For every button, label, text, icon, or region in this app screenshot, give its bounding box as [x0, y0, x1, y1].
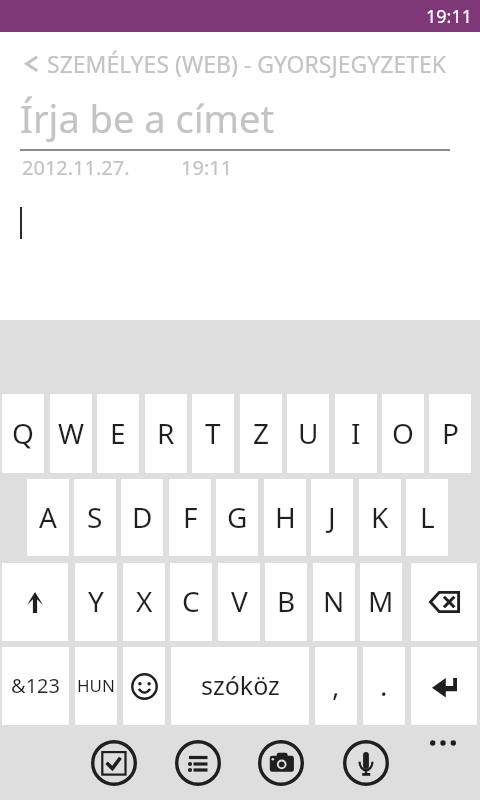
button[interactable]: Voice note: [343, 740, 389, 786]
button[interactable]: L: [406, 479, 448, 556]
button[interactable]: B: [265, 563, 307, 641]
staticText: B: [277, 582, 296, 620]
staticText: Írja be a címet: [20, 92, 275, 144]
staticText: M: [368, 582, 394, 620]
staticText: R: [157, 414, 175, 452]
button[interactable]: D: [121, 479, 163, 556]
button[interactable]: szóköz: [171, 647, 309, 725]
button[interactable]: ,: [315, 647, 357, 725]
button[interactable]: X: [123, 563, 165, 641]
button[interactable]: E: [97, 394, 139, 473]
staticText: C: [182, 582, 200, 620]
staticText: A: [39, 498, 57, 536]
staticText: ,: [332, 666, 340, 704]
button[interactable]: V: [218, 563, 260, 641]
button[interactable]: [411, 563, 477, 641]
staticText: L: [420, 498, 435, 536]
button[interactable]: Q: [2, 394, 44, 473]
button[interactable]: P: [429, 394, 471, 473]
staticText: K: [371, 498, 389, 536]
staticText: T: [205, 414, 221, 452]
staticText: HUN: [77, 674, 115, 697]
button[interactable]: [2, 563, 68, 641]
staticText: S: [87, 498, 103, 536]
button[interactable]: Camera: [258, 740, 304, 786]
staticText: V: [231, 582, 248, 620]
staticText: O: [392, 414, 414, 452]
staticText: P: [442, 414, 459, 452]
button[interactable]: C: [170, 563, 212, 641]
button[interactable]: &123: [2, 647, 69, 725]
button[interactable]: S: [74, 479, 116, 556]
staticText: SZEMÉLYES (WEB) - GYORSJEGYZETEK: [47, 48, 447, 79]
button[interactable]: [411, 647, 477, 725]
button[interactable]: U: [287, 394, 329, 473]
button[interactable]: H: [264, 479, 306, 556]
staticText: I: [351, 414, 361, 452]
button[interactable]: [123, 647, 165, 725]
staticText: szóköz: [201, 668, 280, 702]
button[interactable]: HUN: [75, 647, 117, 725]
staticText: G: [227, 498, 248, 536]
button[interactable]: J: [311, 479, 353, 556]
button[interactable]: K: [359, 479, 401, 556]
staticText: Y: [88, 582, 104, 620]
button[interactable]: I: [335, 394, 377, 473]
staticText: X: [136, 582, 153, 620]
staticText: Z: [253, 414, 270, 452]
staticText: F: [183, 498, 198, 536]
staticText: J: [328, 498, 336, 536]
button[interactable]: Y: [75, 563, 117, 641]
staticText: U: [298, 414, 319, 452]
button[interactable]: G: [216, 479, 258, 556]
staticText: E: [110, 414, 126, 452]
button[interactable]: W: [50, 394, 92, 473]
button[interactable]: M: [360, 563, 402, 641]
button[interactable]: .: [363, 647, 405, 725]
button[interactable]: O: [382, 394, 424, 473]
staticText: H: [275, 498, 296, 536]
staticText: D: [132, 498, 153, 536]
staticText: 19:11: [181, 154, 233, 181]
button[interactable]: SZEMÉLYES (WEB) - GYORSJEGYZETEK: [18, 48, 458, 80]
staticText: N: [323, 582, 345, 620]
staticText: W: [58, 414, 85, 452]
button[interactable]: N: [313, 563, 355, 641]
button[interactable]: T: [192, 394, 234, 473]
staticText: 2012.11.27.: [22, 154, 130, 181]
staticText: &123: [11, 672, 60, 699]
button[interactable]: F: [169, 479, 211, 556]
button[interactable]: More options: [424, 727, 462, 759]
button[interactable]: R: [145, 394, 187, 473]
button[interactable]: Checklist: [91, 740, 137, 786]
staticText: .: [380, 666, 388, 704]
button[interactable]: A: [27, 479, 69, 556]
staticText: 19:11: [426, 4, 473, 29]
button[interactable]: Notes list: [175, 740, 221, 786]
staticText: Q: [12, 414, 34, 452]
button[interactable]: Z: [240, 394, 282, 473]
